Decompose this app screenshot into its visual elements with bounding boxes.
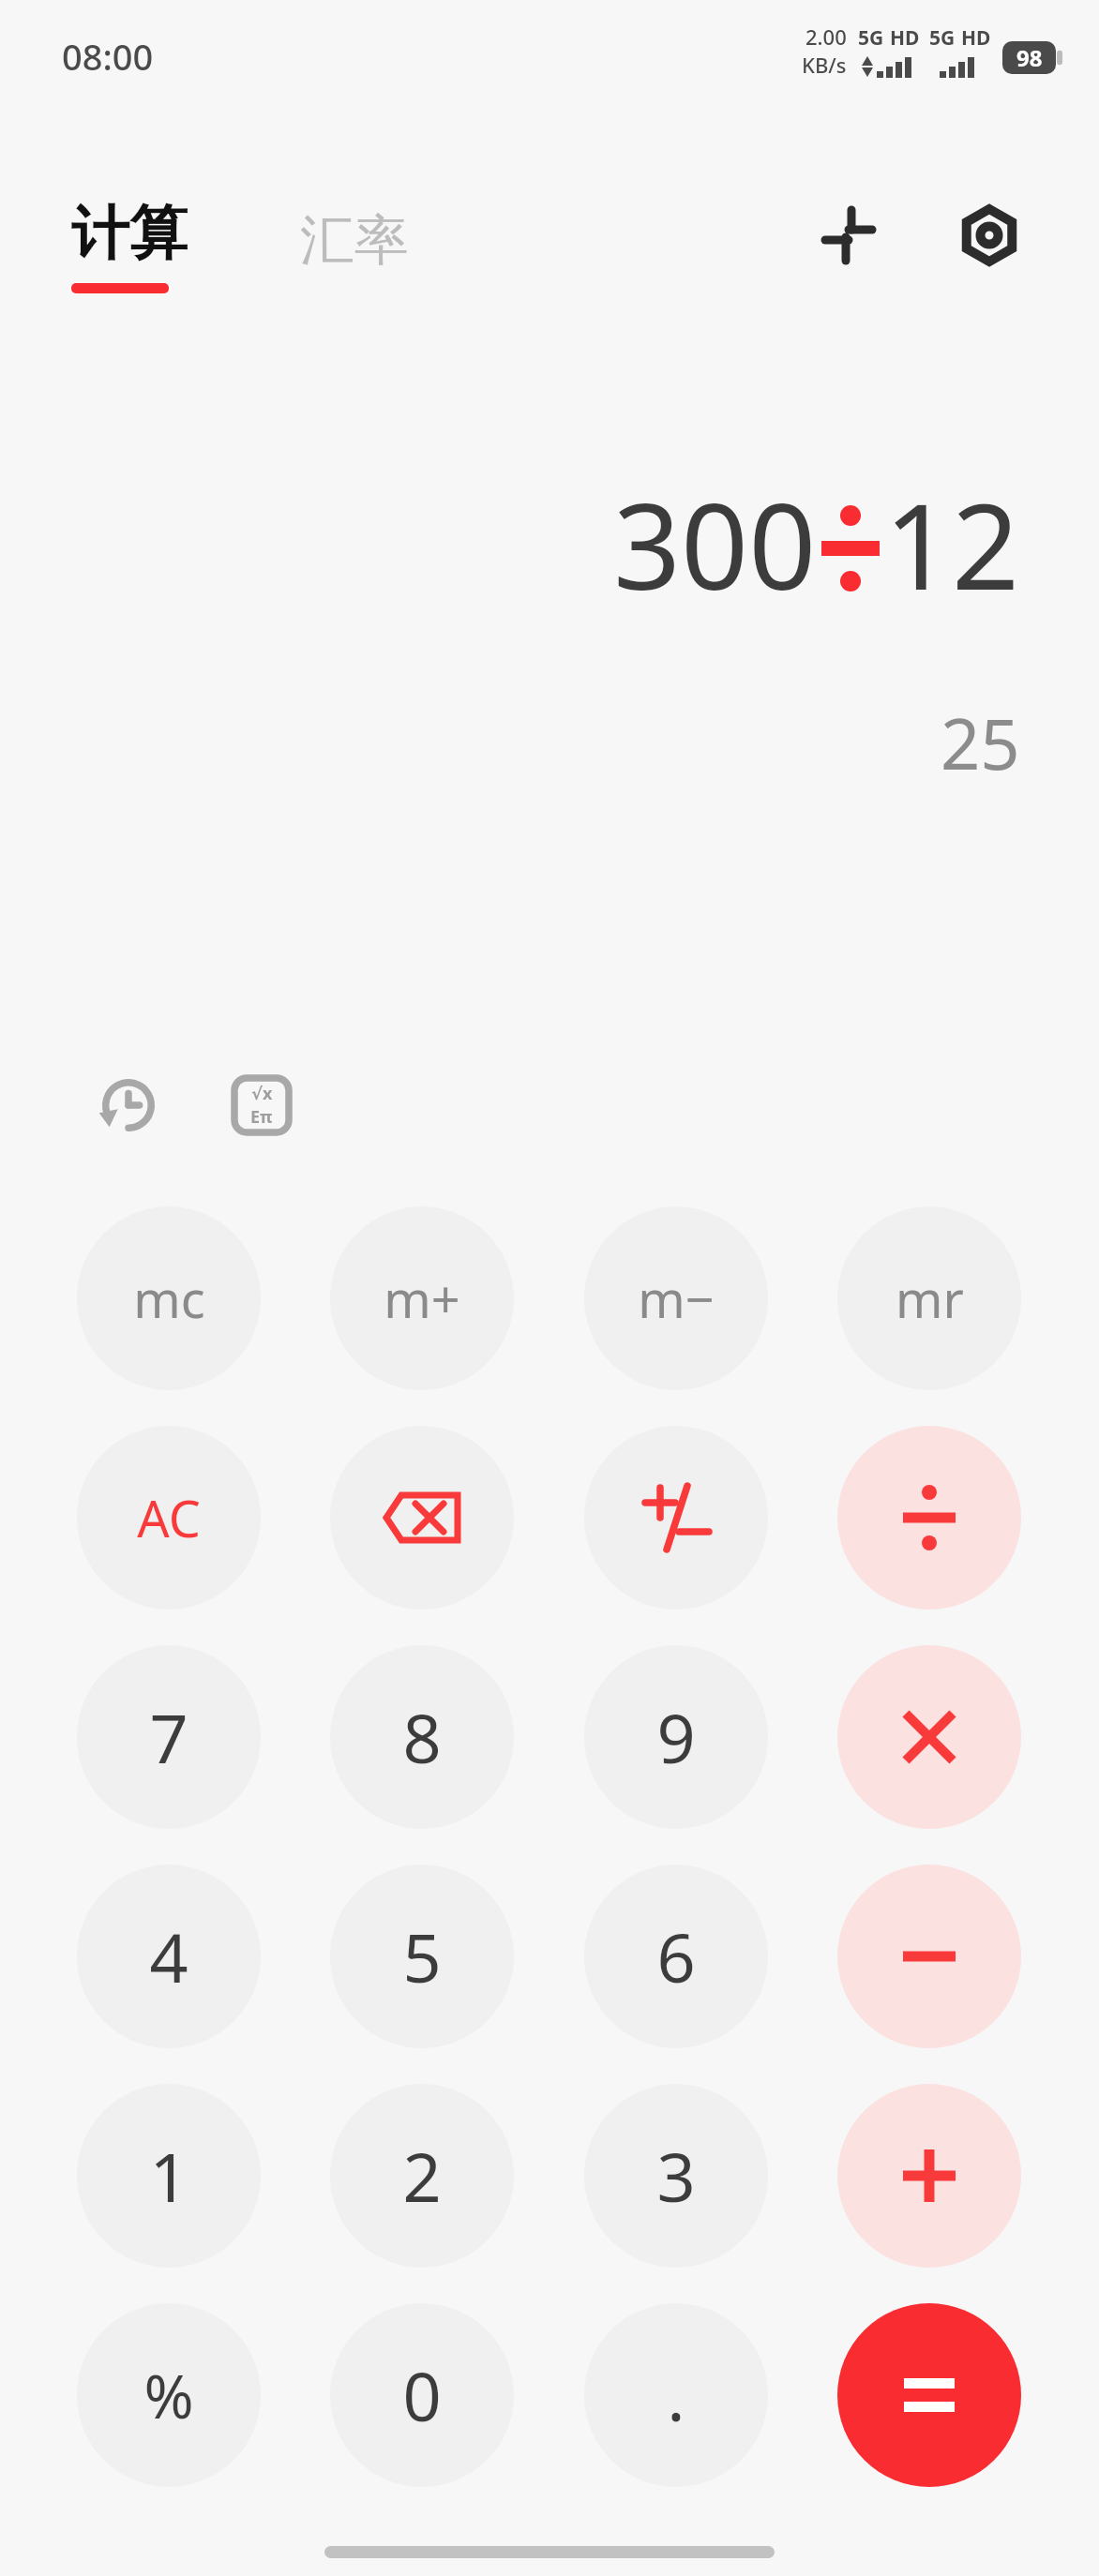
button[interactable]: % (77, 2303, 261, 2487)
button[interactable]: Toggle sign (584, 1426, 768, 1610)
staticText: AC (137, 1483, 201, 1552)
button[interactable]: 2 (330, 2084, 514, 2268)
button[interactable]: mr (837, 1206, 1021, 1390)
staticText: m− (638, 1264, 715, 1333)
staticText: mc (133, 1264, 205, 1333)
staticText: 2.00 (805, 22, 847, 51)
button[interactable]: 6 (584, 1865, 768, 2048)
button[interactable]: Scientific functions (218, 1061, 306, 1149)
button[interactable]: mc (77, 1206, 261, 1390)
button[interactable]: 计算 (58, 193, 201, 297)
staticText: 98 (1016, 42, 1043, 73)
staticText: 1 (149, 2130, 188, 2222)
staticText: 25 (941, 696, 1020, 790)
button[interactable]: Add (837, 2084, 1021, 2268)
staticText: 5G (858, 24, 884, 52)
staticText: 5 (402, 1910, 442, 2002)
button[interactable]: m− (584, 1206, 768, 1390)
staticText: . (667, 2349, 685, 2441)
staticText: mr (896, 1264, 964, 1333)
staticText: 9 (656, 1691, 696, 1783)
button[interactable]: m+ (330, 1206, 514, 1390)
button[interactable]: . (584, 2303, 768, 2487)
button[interactable]: 0 (330, 2303, 514, 2487)
button[interactable]: Multiply (837, 1645, 1021, 1829)
staticText: 300 (613, 463, 817, 624)
staticText: 08:00 (62, 32, 154, 81)
staticText: 6 (656, 1910, 696, 2002)
staticText: KB/s (802, 51, 847, 79)
button[interactable]: 1 (77, 2084, 261, 2268)
staticText: 3 (656, 2130, 696, 2222)
button[interactable]: Expand calculator (808, 195, 889, 276)
staticText: 2 (402, 2130, 442, 2222)
button[interactable]: Settings (945, 191, 1033, 279)
button[interactable]: 5 (330, 1865, 514, 2048)
staticText: 汇率 (300, 206, 409, 275)
staticText: 5G (929, 24, 956, 52)
staticText: 计算 (71, 197, 188, 270)
staticText: 0 (402, 2349, 442, 2441)
button[interactable]: 3 (584, 2084, 768, 2268)
staticText: HD (890, 24, 920, 52)
staticText: % (143, 2355, 194, 2436)
staticText: √x (251, 1082, 273, 1105)
staticText: Eπ (250, 1105, 273, 1129)
staticText: m+ (384, 1264, 460, 1333)
staticText: 12 (884, 463, 1020, 624)
button[interactable]: Backspace (330, 1426, 514, 1610)
button[interactable]: 7 (77, 1645, 261, 1829)
button[interactable]: AC (77, 1426, 261, 1610)
button[interactable]: History (84, 1061, 173, 1149)
button[interactable]: 4 (77, 1865, 261, 2048)
button[interactable]: Subtract (837, 1865, 1021, 2048)
staticText: 7 (149, 1691, 188, 1783)
staticText: 4 (149, 1910, 188, 2002)
button[interactable]: 9 (584, 1645, 768, 1829)
button[interactable]: 汇率 (287, 199, 422, 282)
button[interactable]: Equals (837, 2303, 1021, 2487)
staticText: HD (961, 24, 991, 52)
button[interactable]: Divide (837, 1426, 1021, 1610)
staticText: 8 (402, 1691, 442, 1783)
button[interactable]: 8 (330, 1645, 514, 1829)
